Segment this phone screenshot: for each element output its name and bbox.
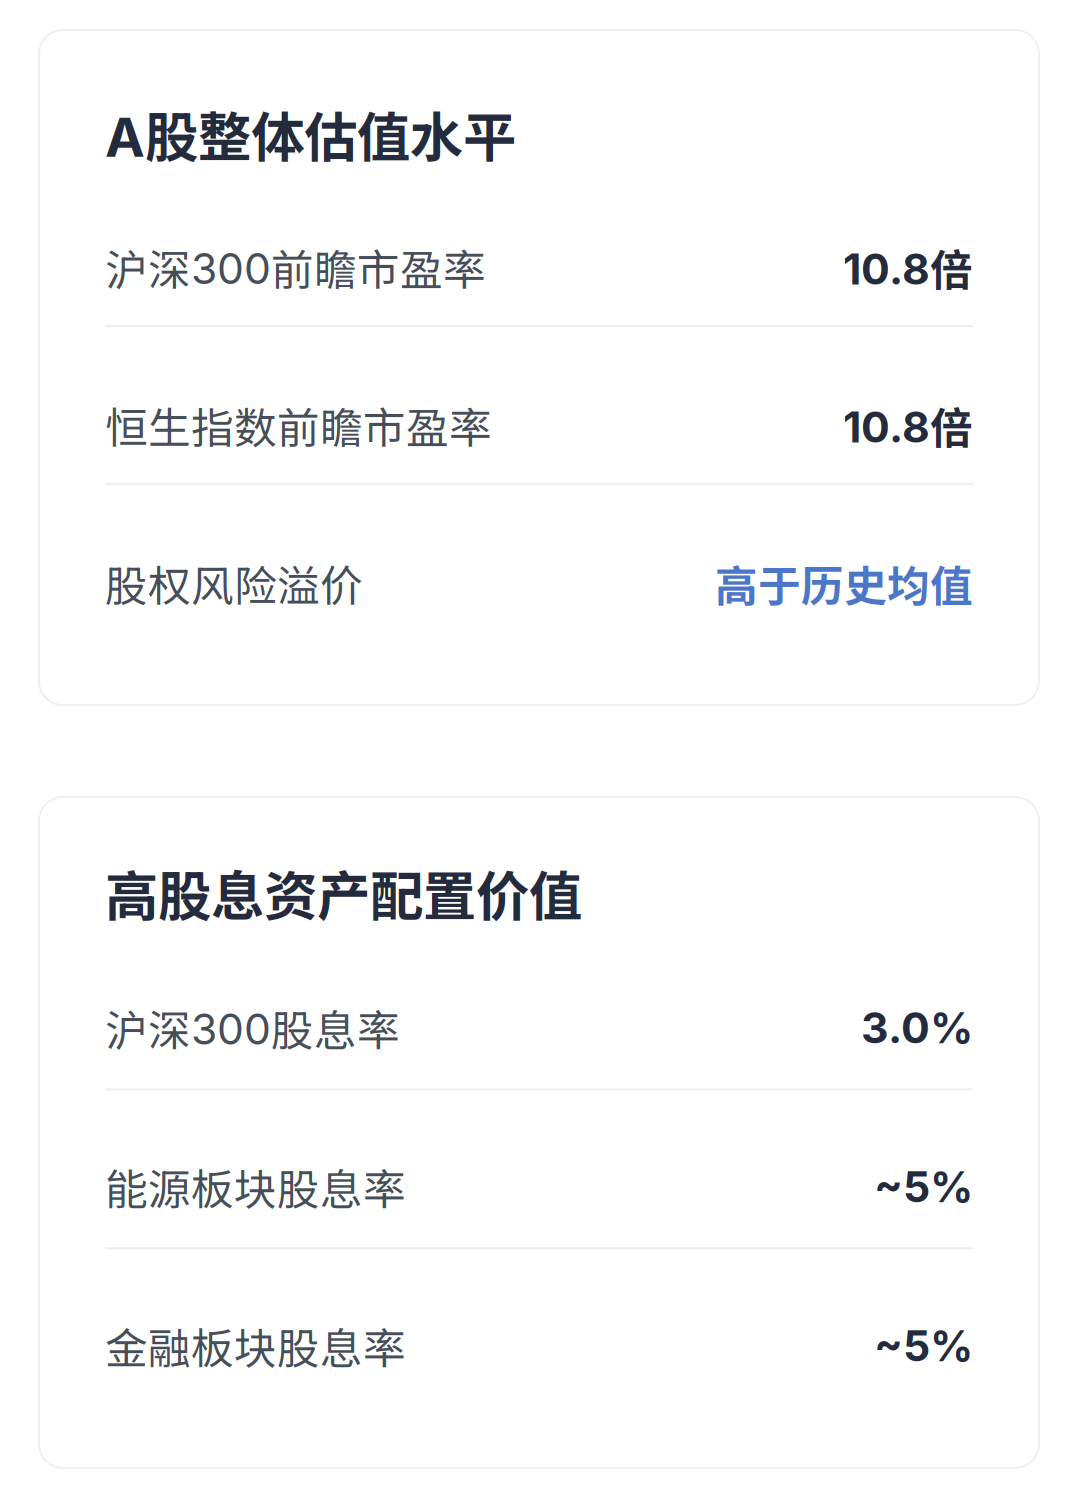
button[interactable]: 金融板块股息率: [105, 1285, 973, 1406]
staticText: 高于历史均值: [715, 552, 973, 614]
staticText: 10.8倍: [843, 236, 973, 298]
staticText: 沪深300前瞻市盈率: [105, 236, 486, 298]
staticText: ~5%: [874, 1161, 973, 1212]
staticText: 能源板块股息率: [105, 1156, 406, 1218]
staticText: A股整体估值水平: [105, 95, 516, 172]
button[interactable]: 沪深300前瞻市盈率: [105, 209, 973, 327]
staticText: 股权风险溢价: [105, 552, 363, 614]
staticText: 恒生指数前瞻市盈率: [105, 394, 492, 456]
staticText: ~5%: [874, 1320, 973, 1371]
staticText: 10.8倍: [843, 394, 973, 456]
button[interactable]: 股权风险溢价: [105, 525, 973, 641]
staticText: 沪深300股息率: [105, 997, 400, 1059]
staticText: 金融板块股息率: [105, 1315, 406, 1377]
button[interactable]: 沪深300股息率: [105, 967, 973, 1090]
staticText: 3.0%: [861, 1002, 973, 1053]
staticText: 高股息资产配置价值: [105, 854, 582, 931]
button[interactable]: 能源板块股息率: [105, 1126, 973, 1249]
button[interactable]: 恒生指数前瞻市盈率: [105, 367, 973, 485]
